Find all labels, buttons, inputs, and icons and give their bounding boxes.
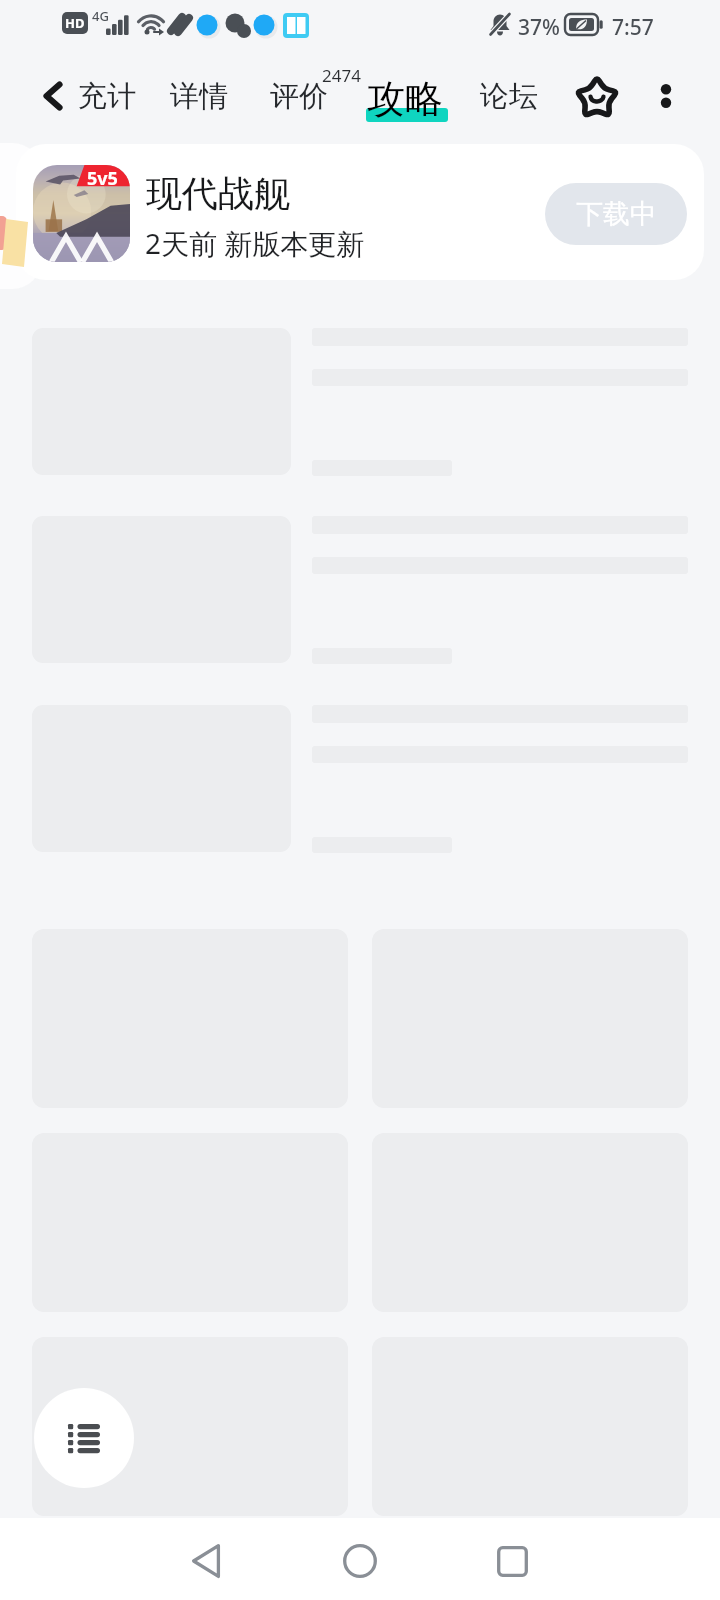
- button[interactable]: 下载中: [545, 183, 687, 245]
- staticText: 37%: [518, 13, 560, 42]
- button[interactable]: 论坛: [480, 78, 538, 115]
- staticText: 5v5: [87, 166, 118, 191]
- staticText: 详情: [170, 78, 228, 115]
- button[interactable]: 5v5: [16, 144, 704, 280]
- staticText: 2天前 新版本更新: [145, 224, 365, 262]
- button[interactable]: Catalog list: [34, 1388, 134, 1488]
- button[interactable]: 攻略: [367, 75, 443, 123]
- staticText: 论坛: [480, 78, 538, 115]
- button[interactable]: 充计: [78, 78, 136, 115]
- button[interactable]: Back: [26, 69, 80, 123]
- staticText: 现代战舰: [146, 171, 290, 216]
- staticText: 评价: [270, 78, 328, 115]
- staticText: 攻略: [367, 75, 443, 123]
- staticText: 7:57: [612, 13, 654, 42]
- staticText: HD: [65, 14, 85, 32]
- staticText: 充计: [78, 78, 136, 115]
- button[interactable]: Recent apps: [482, 1531, 542, 1591]
- button[interactable]: 评价: [270, 78, 328, 115]
- staticText: 2474: [322, 64, 361, 87]
- button[interactable]: Favorite: [568, 68, 626, 126]
- staticText: 下载中: [576, 197, 657, 231]
- button[interactable]: 详情: [170, 78, 228, 115]
- staticText: 4G: [92, 7, 109, 25]
- button[interactable]: Back: [176, 1531, 236, 1591]
- button[interactable]: Home: [330, 1531, 390, 1591]
- button[interactable]: More options: [638, 68, 694, 124]
